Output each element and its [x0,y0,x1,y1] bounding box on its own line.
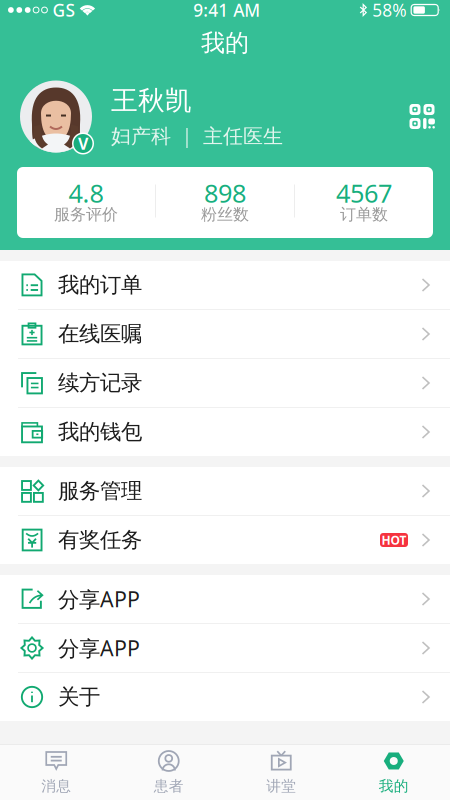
button[interactable]: 患者 [112,742,225,800]
button[interactable]: 讲堂 [225,742,337,800]
staticText: 服务评价 [54,205,118,224]
staticText: 我的 [201,28,249,58]
staticText: 分享APP [58,634,140,662]
button[interactable]: 我的订单 [0,261,450,310]
staticText: GS [52,0,75,21]
staticText: 订单数 [340,205,388,224]
staticText: 我的订单 [58,272,142,298]
staticText: 王秋凯 [111,84,192,117]
staticText: 关于 [58,684,100,710]
button[interactable]: 分享APP [0,624,450,673]
staticText: 我的 [379,777,409,795]
button[interactable]: 我的钱包 [0,408,450,456]
button[interactable]: 关于 [0,673,450,721]
staticText: 讲堂 [266,777,296,795]
button[interactable]: 我的 [337,742,450,800]
button[interactable]: 分享APP [0,575,450,624]
staticText: 在线医嘱 [58,321,142,347]
staticText: 我的钱包 [58,419,142,445]
button[interactable]: 二维码 [409,103,435,129]
button[interactable]: 在线医嘱 [0,310,450,359]
staticText: 粉丝数 [201,205,249,224]
staticText: 有奖任务 [58,527,142,553]
staticText: 消息 [41,777,71,795]
staticText: 4.8 [68,176,103,210]
staticText: 续方记录 [58,370,142,396]
staticText: 9:41 AM [193,0,260,21]
button[interactable]: 有奖任务 [0,516,450,564]
button[interactable]: 消息 [0,742,112,800]
staticText: 患者 [154,777,184,795]
staticText: 妇产科 ｜ 主任医生 [111,124,283,149]
staticText: 4567 [336,176,392,210]
staticText: V [78,133,88,154]
button[interactable]: 服务管理 [0,467,450,516]
staticText: HOT [381,532,406,548]
staticText: 分享APP [58,585,140,613]
button[interactable]: 续方记录 [0,359,450,408]
staticText: 服务管理 [58,478,142,504]
staticText: 58% [372,0,406,21]
staticText: 898 [204,176,246,210]
